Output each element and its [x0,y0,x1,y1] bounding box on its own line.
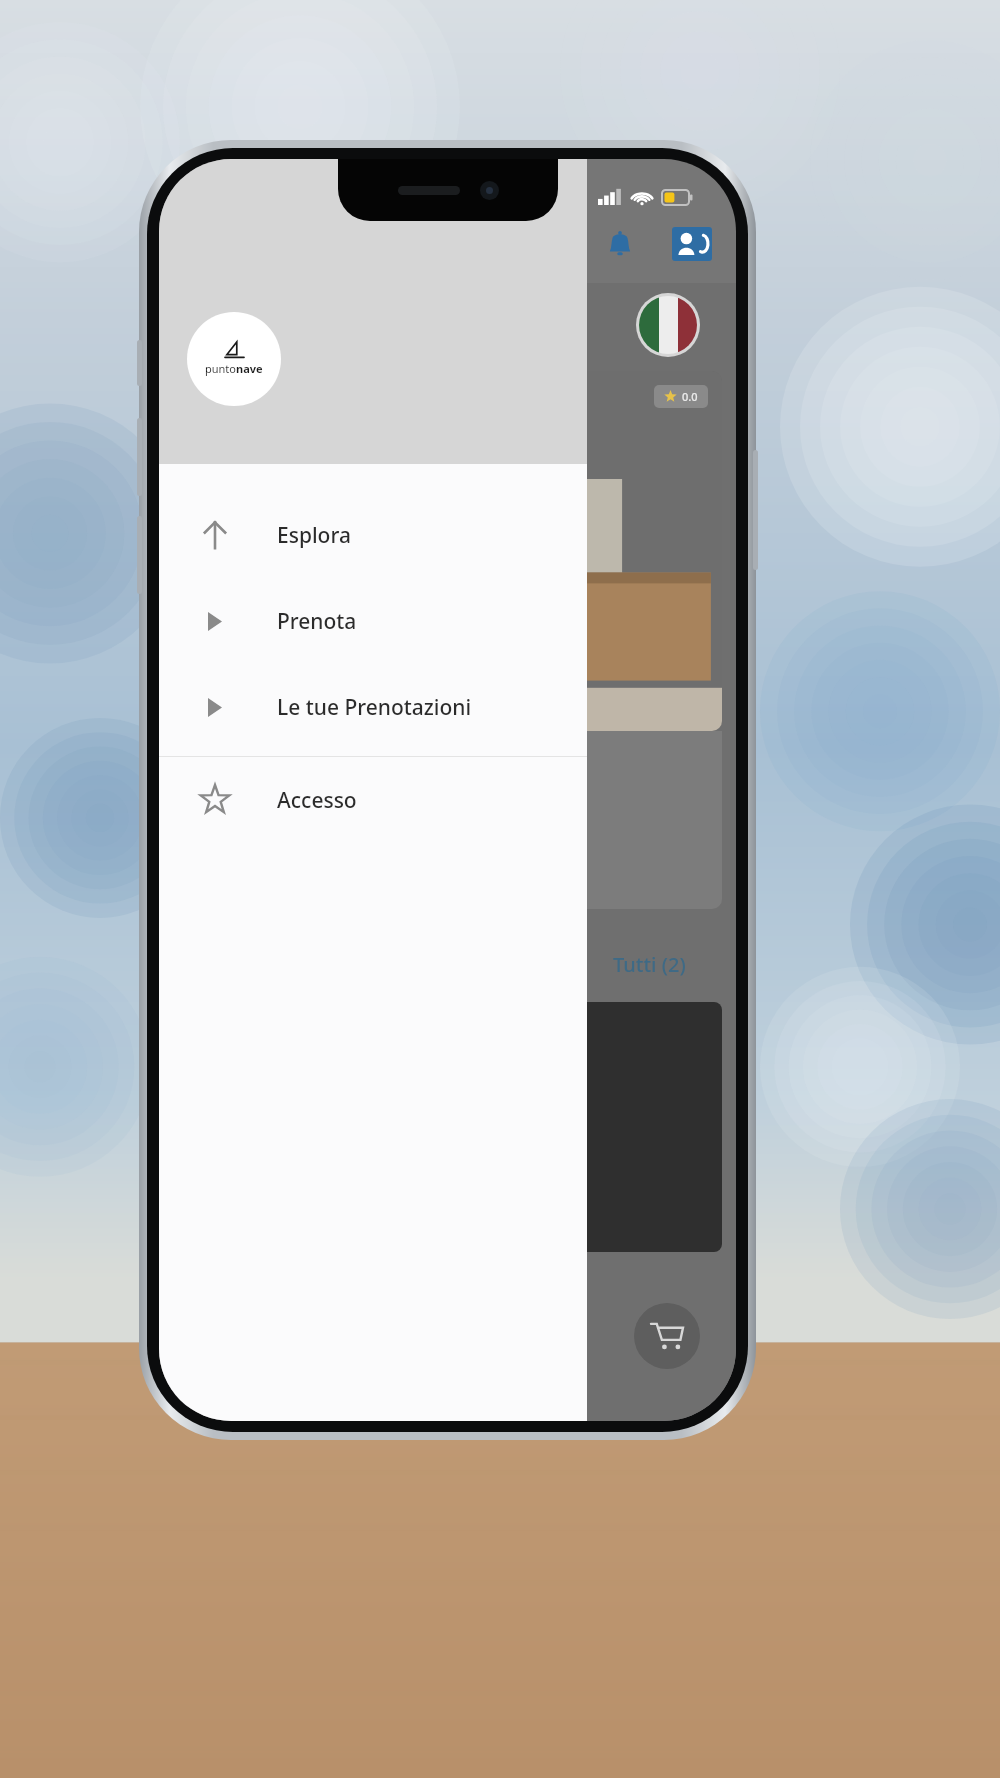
button[interactable]: Notifiche [594,218,646,270]
staticText: nave [236,361,263,376]
button[interactable]: Carrello [634,1303,700,1369]
button[interactable]: Le tue Prenotazioni [159,664,587,750]
button[interactable]: Esplora [159,492,587,578]
staticText: punto [205,361,236,376]
staticText: Esplora [277,521,351,550]
button[interactable]: Tutti (2) [607,945,692,984]
staticText: Accesso [277,786,357,815]
button[interactable]: Lingua [639,296,697,354]
button[interactable]: Accesso [159,757,587,843]
staticText: 0.0 [682,389,698,404]
staticText: Prenota [277,607,357,636]
button[interactable]: Prenota [159,578,587,664]
button[interactable]: 0.0 [167,371,722,731]
staticText: Tutti (2) [613,951,686,978]
staticText: Le tue Prenotazioni [277,693,472,722]
button[interactable]: Contatti [666,218,718,270]
button[interactable]: Profilo [187,312,281,406]
